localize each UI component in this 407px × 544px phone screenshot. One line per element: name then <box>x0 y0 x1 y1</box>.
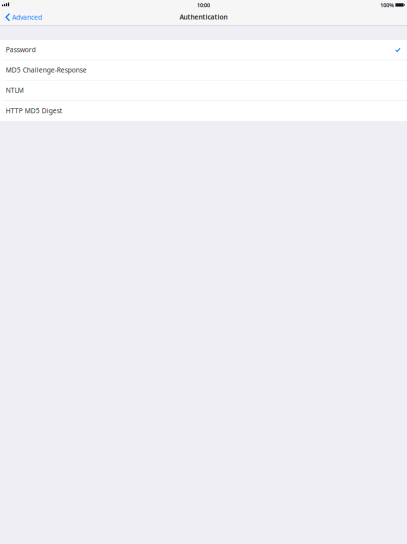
staticText: Password <box>6 45 36 54</box>
button[interactable]: Password <box>0 40 407 60</box>
button[interactable]: NTLM <box>0 80 407 101</box>
staticText: 100% <box>380 2 394 9</box>
staticText: 10:00 <box>197 2 210 9</box>
button[interactable]: HTTP MD5 Digest <box>0 101 407 121</box>
staticText: Authentication <box>179 13 227 21</box>
button[interactable]: MD5 Challenge-Response <box>0 60 407 80</box>
staticText: NTLM <box>6 86 24 94</box>
staticText: MD5 Challenge-Response <box>6 65 87 74</box>
staticText: Advanced <box>12 13 42 22</box>
staticText: HTTP MD5 Digest <box>6 106 62 115</box>
button[interactable]: Advanced <box>0 11 46 25</box>
